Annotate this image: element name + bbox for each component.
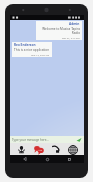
staticText: Feb 27, 3:17 am [62,36,80,39]
button[interactable]: Admin [36,21,82,40]
button[interactable]: Chat [33,144,44,155]
staticText: Rex Enderson [14,43,36,47]
button[interactable]: Voice message [16,144,27,155]
button[interactable]: Home [40,155,54,163]
staticText: Welcome to Musica Tapira Radio [38,27,80,35]
staticText: Mar 13, 6:36 AM [31,53,50,56]
button[interactable]: Type your message here... [10,136,84,143]
button[interactable]: Send [76,137,82,143]
button[interactable]: Back [18,155,32,163]
button[interactable]: Call [50,144,61,155]
staticText: Admin [69,22,80,26]
button[interactable]: Web [67,144,78,155]
staticText: This is a nice application [14,48,50,52]
staticText: Type your message here... [12,138,49,142]
button[interactable]: Rex Enderson [12,42,52,57]
button[interactable]: Recents [62,155,76,163]
